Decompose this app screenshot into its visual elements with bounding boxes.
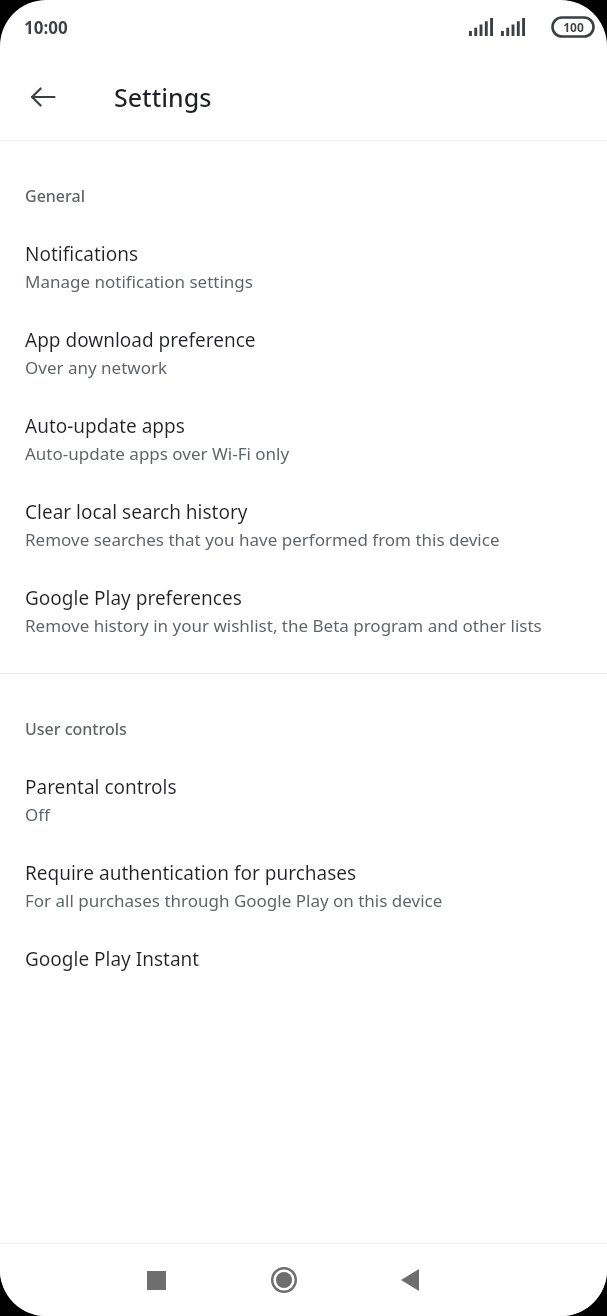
staticText: Manage notification settings: [25, 270, 253, 293]
staticText: App download preference: [25, 327, 256, 353]
button[interactable]: Notifications: [0, 211, 607, 297]
staticText: Auto-update apps: [25, 413, 185, 439]
staticText: Over any network: [25, 356, 168, 379]
button[interactable]: Google Play Instant: [0, 916, 607, 976]
button[interactable]: Recent apps: [128, 1252, 184, 1308]
button[interactable]: Auto-update apps: [0, 383, 607, 469]
staticText: Google Play Instant: [25, 946, 200, 972]
staticText: For all purchases through Google Play on…: [25, 889, 443, 912]
staticText: Auto-update apps over Wi-Fi only: [25, 442, 290, 465]
staticText: Require authentication for purchases: [25, 860, 357, 886]
button[interactable]: Back: [382, 1252, 438, 1308]
staticText: General: [25, 185, 85, 207]
button[interactable]: Home: [256, 1252, 312, 1308]
staticText: Off: [25, 803, 50, 826]
staticText: Remove history in your wishlist, the Bet…: [25, 614, 542, 637]
button[interactable]: Clear local search history: [0, 469, 607, 555]
staticText: Clear local search history: [25, 499, 248, 525]
staticText: User controls: [25, 718, 127, 740]
staticText: 100: [563, 19, 584, 35]
staticText: Settings: [114, 80, 212, 114]
staticText: Notifications: [25, 241, 139, 267]
staticText: Google Play preferences: [25, 585, 242, 611]
button[interactable]: App download preference: [0, 297, 607, 383]
staticText: 10:00: [24, 16, 68, 39]
button[interactable]: Back: [19, 73, 67, 121]
button[interactable]: Google Play preferences: [0, 555, 607, 641]
staticText: Remove searches that you have performed …: [25, 528, 500, 551]
staticText: Parental controls: [25, 774, 177, 800]
button[interactable]: Require authentication for purchases: [0, 830, 607, 916]
button[interactable]: Parental controls: [0, 744, 607, 830]
